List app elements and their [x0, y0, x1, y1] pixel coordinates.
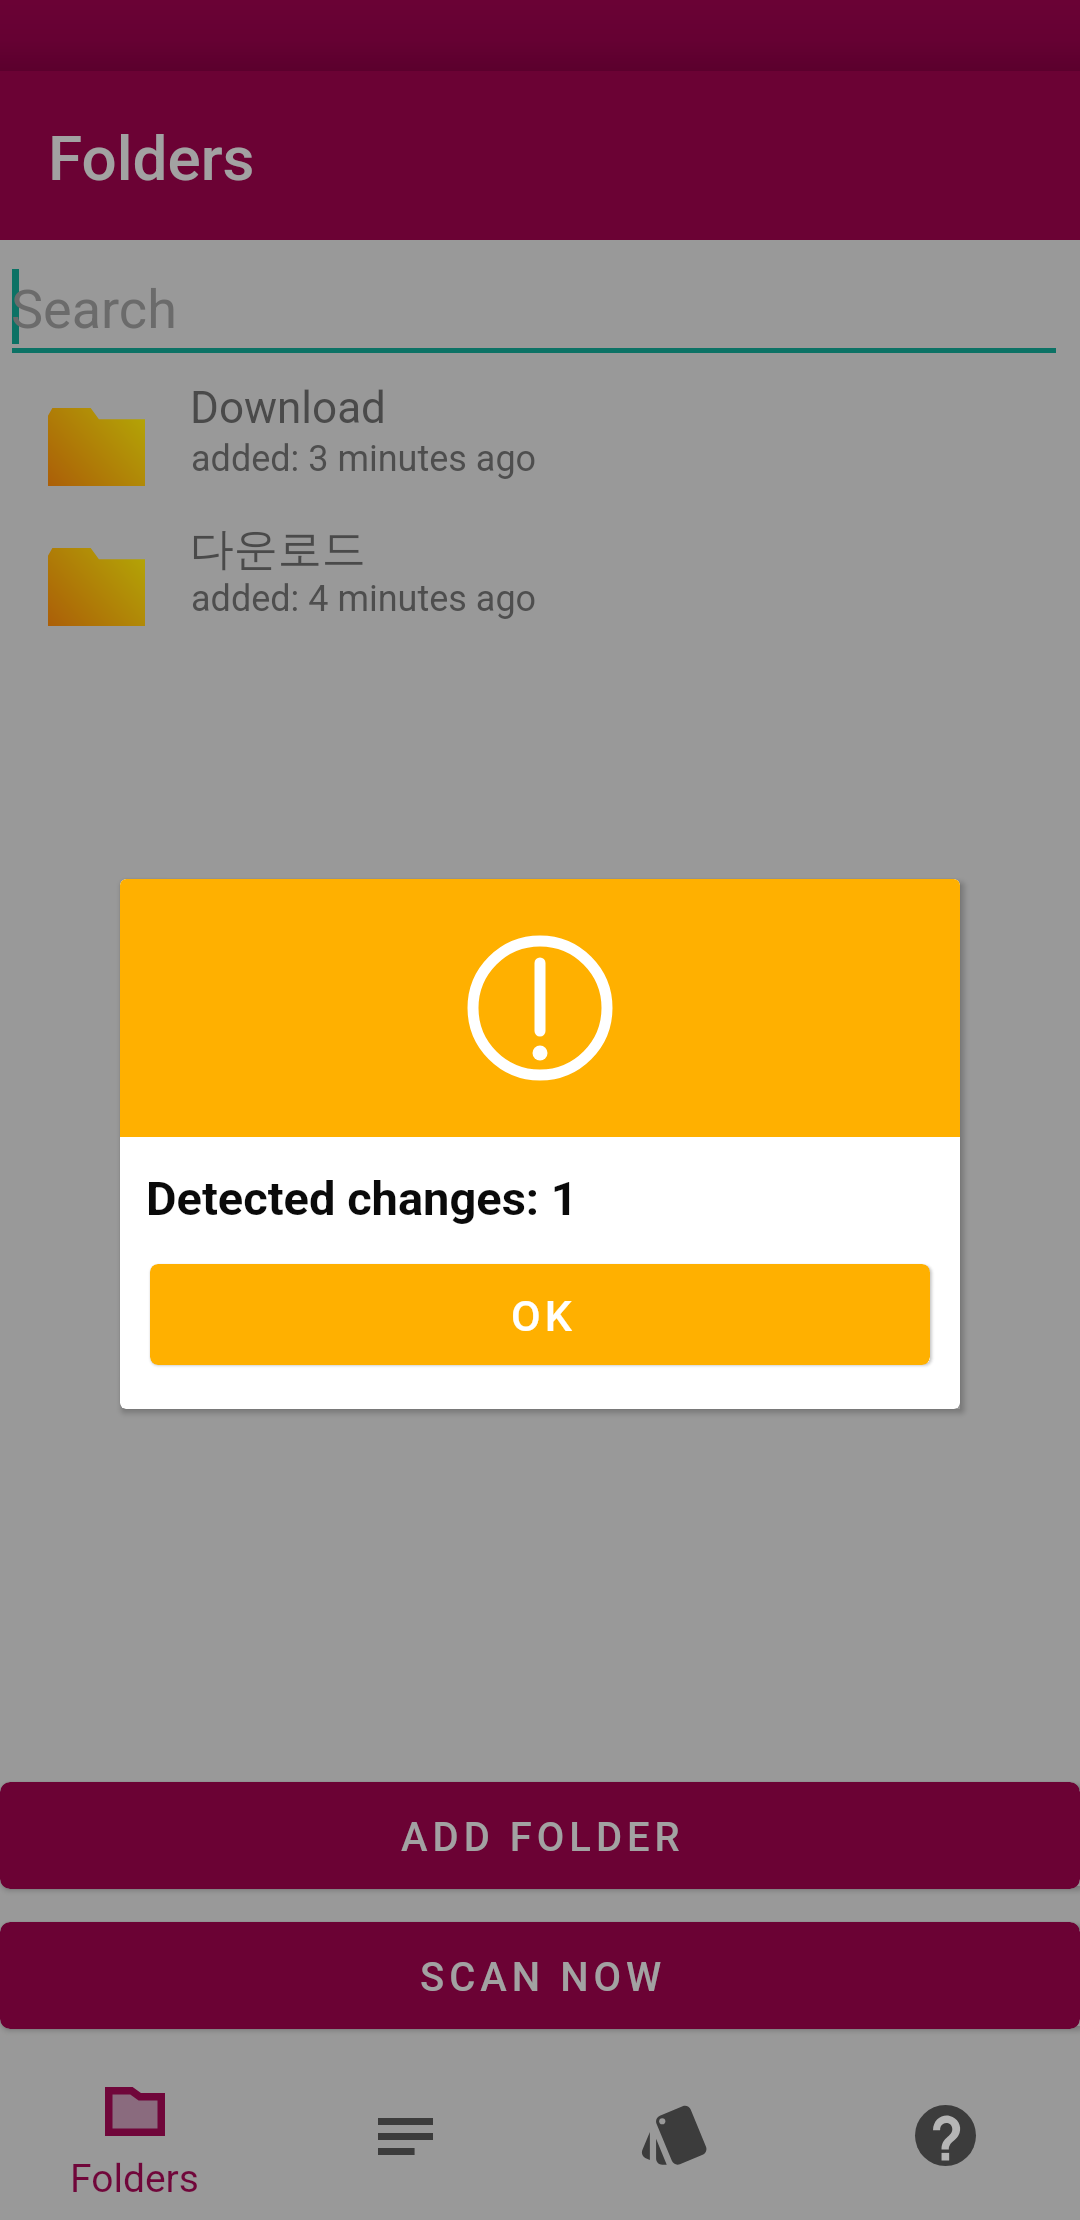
staticText: Detected changes: 1	[146, 1171, 578, 1226]
button[interactable]: Help	[810, 2029, 1080, 2220]
staticText: added: 4 minutes ago	[191, 578, 537, 620]
button[interactable]: Folders	[0, 2029, 270, 2220]
button[interactable]: Sort	[270, 2029, 540, 2220]
button[interactable]: SCAN NOW	[0, 1922, 1080, 2029]
staticText: Folders	[70, 2156, 199, 2202]
staticText: Download	[190, 382, 386, 434]
staticText: added: 3 minutes ago	[191, 438, 537, 480]
staticText: OK	[511, 1291, 576, 1341]
staticText: ADD FOLDER	[401, 1814, 685, 1861]
button[interactable]: Themes	[540, 2029, 810, 2220]
staticText: Folders	[48, 122, 255, 195]
button[interactable]: Download	[0, 353, 1080, 493]
button[interactable]: ADD FOLDER	[0, 1782, 1080, 1889]
button[interactable]: OK	[150, 1264, 930, 1365]
staticText: Search	[11, 278, 177, 341]
button[interactable]: 다운로드	[0, 493, 1080, 633]
staticText: SCAN NOW	[420, 1954, 667, 2001]
staticText: 다운로드	[190, 522, 366, 577]
